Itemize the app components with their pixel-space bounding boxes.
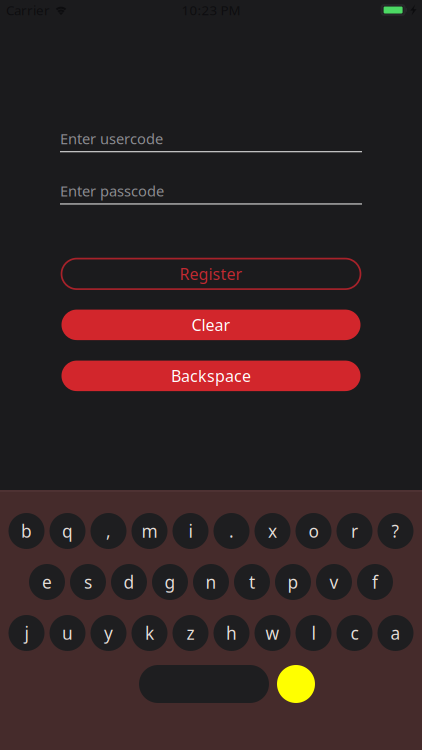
staticText: u	[62, 621, 73, 644]
staticText: .	[229, 519, 234, 542]
staticText: Carrier	[6, 1, 50, 19]
button[interactable]: v	[316, 564, 352, 600]
staticText: i	[188, 519, 192, 542]
staticText: b	[21, 519, 32, 542]
button[interactable]: f	[357, 564, 393, 600]
button[interactable]: e	[29, 564, 65, 600]
button[interactable]: i	[172, 513, 208, 549]
staticText: q	[62, 519, 73, 542]
staticText: w	[265, 621, 279, 644]
button[interactable]: ?	[377, 513, 413, 549]
button[interactable]: .	[213, 513, 249, 549]
staticText: f	[372, 570, 378, 593]
staticText: l	[311, 621, 315, 644]
button[interactable]: r	[336, 513, 372, 549]
button[interactable]: ,	[90, 513, 126, 549]
staticText: j	[24, 621, 28, 644]
button[interactable]: a	[377, 615, 413, 651]
button[interactable]: d	[111, 564, 147, 600]
staticText: o	[308, 519, 318, 542]
staticText: Enter usercode	[60, 129, 163, 148]
button[interactable]: u	[49, 615, 85, 651]
button[interactable]: Clear	[61, 310, 360, 340]
staticText: p	[287, 570, 298, 593]
staticText: d	[123, 570, 134, 593]
staticText: k	[145, 621, 154, 644]
button[interactable]: y	[90, 615, 126, 651]
button[interactable]: q	[49, 513, 85, 549]
staticText: a	[390, 621, 400, 644]
staticText: z	[186, 621, 194, 644]
button[interactable]: w	[254, 615, 290, 651]
button[interactable]: z	[172, 615, 208, 651]
button[interactable]: x	[254, 513, 290, 549]
button[interactable]: Backspace	[61, 361, 360, 391]
staticText: s	[84, 570, 92, 593]
button[interactable]: l	[295, 615, 331, 651]
staticText: c	[350, 621, 358, 644]
button[interactable]: k	[131, 615, 167, 651]
staticText: g	[164, 570, 175, 593]
staticText: Register	[179, 263, 242, 284]
staticText: ,	[106, 519, 111, 542]
staticText: m	[141, 519, 157, 542]
button[interactable]: c	[336, 615, 372, 651]
staticText: Backspace	[171, 365, 251, 386]
button[interactable]: s	[70, 564, 106, 600]
staticText: v	[329, 570, 338, 593]
staticText: n	[205, 570, 216, 593]
button[interactable]: j	[8, 615, 44, 651]
button[interactable]: m	[131, 513, 167, 549]
staticText: Enter passcode	[60, 181, 164, 201]
staticText: Clear	[191, 314, 230, 335]
button[interactable]: b	[8, 513, 44, 549]
button[interactable]: g	[152, 564, 188, 600]
staticText: r	[351, 519, 358, 542]
staticText: h	[226, 621, 237, 644]
button[interactable]: o	[295, 513, 331, 549]
staticText: ?	[391, 519, 399, 542]
button[interactable]: p	[275, 564, 311, 600]
staticText: t	[249, 570, 255, 593]
staticText: e	[42, 570, 52, 593]
button[interactable]: h	[213, 615, 249, 651]
staticText: x	[268, 519, 277, 542]
button[interactable]: Register	[61, 259, 360, 289]
button[interactable]: t	[234, 564, 270, 600]
staticText: y	[104, 621, 113, 644]
button[interactable]: Space	[139, 665, 269, 703]
button[interactable]: n	[193, 564, 229, 600]
staticText: 10:23 PM	[181, 1, 240, 19]
button[interactable]: Enter	[277, 665, 315, 703]
